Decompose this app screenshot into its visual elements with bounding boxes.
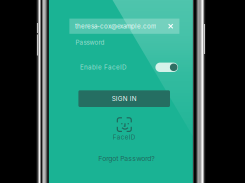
- staticText: SIGN IN: [112, 95, 137, 102]
- button[interactable]: SIGN IN: [78, 90, 170, 107]
- button[interactable]: Enable FaceID: [155, 63, 178, 72]
- button[interactable]: FaceID: [113, 117, 136, 141]
- button[interactable]: Password: [69, 36, 179, 49]
- staticText: FaceID: [113, 133, 136, 141]
- staticText: Password: [75, 39, 104, 46]
- staticText: theresa-cox@example.com: [75, 22, 156, 30]
- staticText: Forgot Password?: [98, 154, 154, 163]
- button[interactable]: Forgot Password?: [98, 154, 154, 163]
- button[interactable]: Clear email: [168, 24, 173, 29]
- staticText: Enable FaceID: [80, 63, 127, 71]
